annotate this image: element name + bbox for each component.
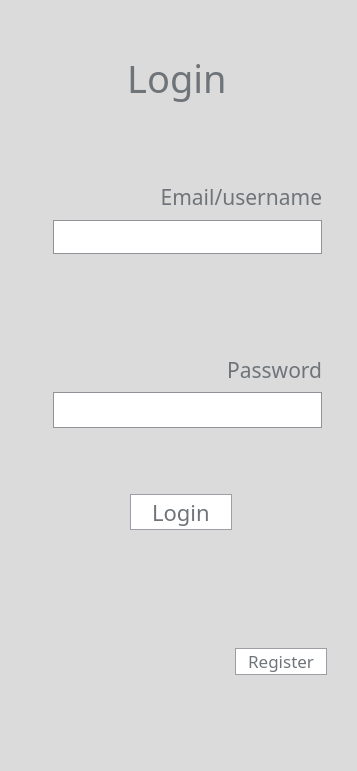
staticText: Password [0,356,322,385]
staticText: Login [127,52,227,104]
button[interactable]: Login [130,494,232,530]
button[interactable]: Register [235,648,327,675]
button[interactable]: Password field [53,392,322,428]
staticText: Register [248,650,314,673]
staticText: Login [152,497,210,527]
button[interactable]: Email or username field [53,220,322,254]
staticText: Email/username [0,183,322,212]
